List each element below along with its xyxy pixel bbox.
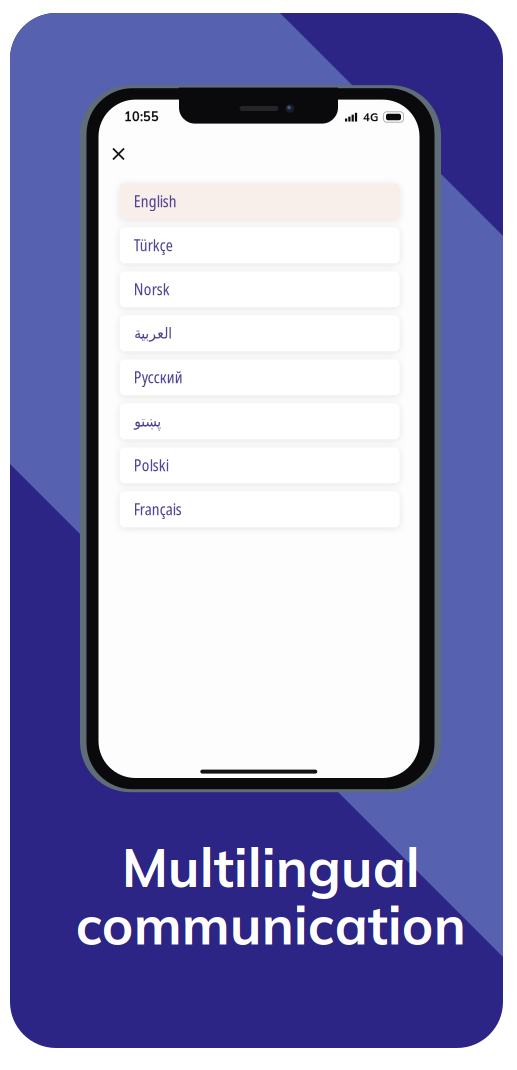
staticText: Русский bbox=[134, 367, 183, 388]
staticText: Multilingual bbox=[122, 833, 420, 900]
staticText: communication bbox=[76, 891, 466, 958]
button[interactable]: Türkçe bbox=[120, 227, 400, 263]
button[interactable]: پښتو bbox=[120, 403, 400, 439]
button[interactable]: Polski bbox=[120, 447, 400, 483]
button[interactable]: Русский bbox=[120, 359, 400, 395]
staticText: پښتو bbox=[134, 412, 161, 430]
button[interactable]: Français bbox=[120, 491, 400, 527]
button[interactable]: Norsk bbox=[120, 271, 400, 307]
staticText: 4G bbox=[363, 110, 378, 124]
staticText: العربية bbox=[134, 324, 172, 342]
button[interactable]: Close bbox=[105, 140, 132, 167]
staticText: 10:55 bbox=[124, 109, 159, 124]
staticText: Türkçe bbox=[134, 235, 173, 256]
button[interactable]: العربية bbox=[120, 315, 400, 351]
staticText: Français bbox=[134, 499, 182, 520]
staticText: Polski bbox=[134, 455, 169, 476]
staticText: English bbox=[134, 191, 177, 212]
button[interactable]: English bbox=[120, 183, 400, 219]
staticText: Norsk bbox=[134, 279, 170, 300]
